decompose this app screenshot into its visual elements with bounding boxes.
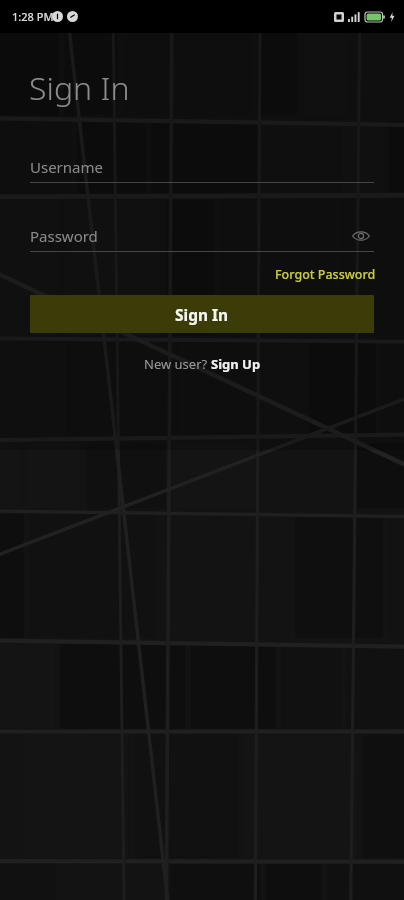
button[interactable]: Sign Up	[211, 355, 261, 373]
staticText: New user?	[144, 355, 211, 373]
button[interactable]: Show password	[348, 223, 374, 249]
staticText: Sign In	[175, 304, 229, 325]
button[interactable]: Username	[30, 152, 374, 182]
button[interactable]: Password	[30, 221, 374, 251]
staticText: Username	[30, 157, 103, 177]
staticText: 1:28 PM	[12, 9, 54, 24]
staticText: Sign In	[29, 66, 130, 110]
staticText: Sign Up	[211, 355, 261, 373]
button[interactable]: Forgot Password	[273, 263, 378, 286]
button[interactable]: Sign In	[30, 295, 374, 333]
staticText: Forgot Password	[275, 266, 376, 283]
staticText: Password	[30, 226, 98, 246]
